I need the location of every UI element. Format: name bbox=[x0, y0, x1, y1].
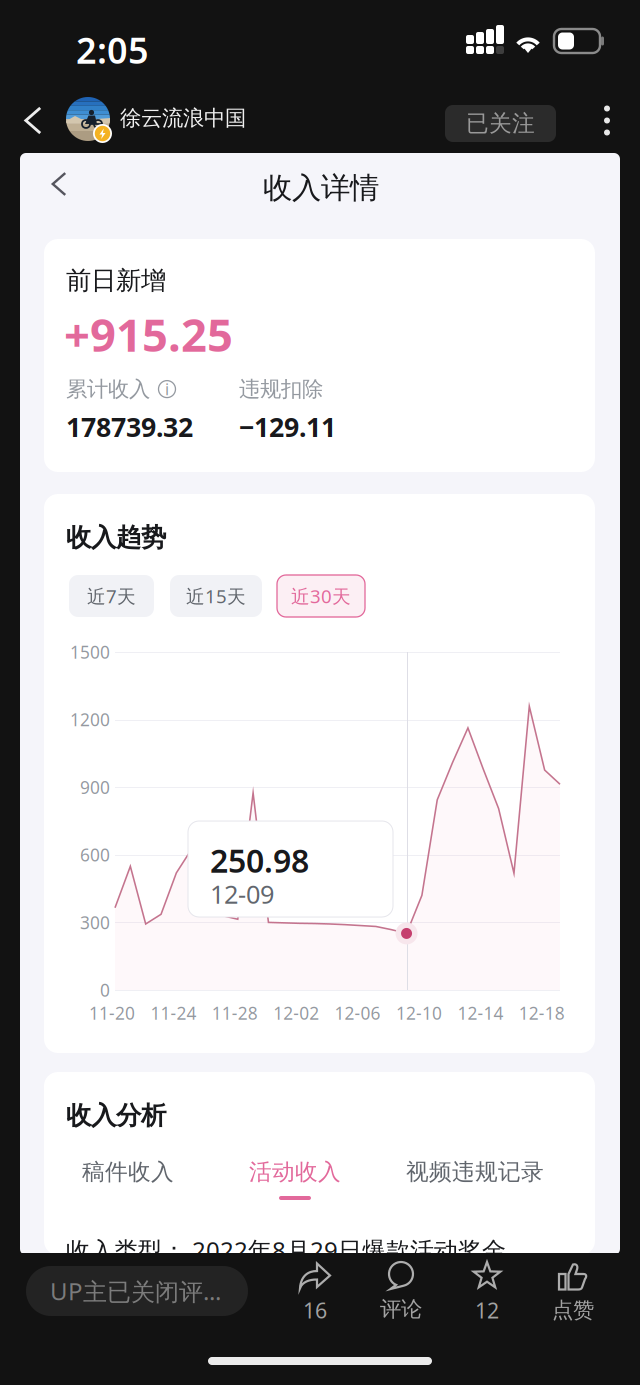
staticText: 1200 bbox=[70, 708, 110, 731]
staticText: 近15天 bbox=[186, 584, 246, 608]
button[interactable]: 12 bbox=[444, 1261, 530, 1327]
staticText: 11-20 bbox=[89, 1001, 135, 1024]
button[interactable]: 评论 bbox=[358, 1261, 444, 1327]
staticText: 评论 bbox=[380, 1296, 422, 1322]
button[interactable]: 16 bbox=[272, 1261, 358, 1327]
staticText: 违规扣除 bbox=[239, 376, 323, 402]
staticText: 12-14 bbox=[457, 1001, 503, 1024]
staticText: 250.98 bbox=[210, 839, 309, 881]
staticText: 前日新增 bbox=[66, 265, 166, 296]
staticText: 900 bbox=[80, 776, 110, 799]
staticText: 11-28 bbox=[212, 1001, 258, 1024]
staticText: 300 bbox=[80, 911, 110, 934]
staticText: 12-02 bbox=[273, 1001, 319, 1024]
staticText: 178739.32 bbox=[66, 409, 193, 444]
staticText: 0 bbox=[100, 978, 110, 1001]
button[interactable]: 近30天 bbox=[277, 575, 365, 617]
button[interactable]: UP主已关闭评... bbox=[26, 1266, 248, 1316]
staticText: 点赞 bbox=[552, 1297, 594, 1323]
staticText: 1500 bbox=[70, 640, 110, 663]
button[interactable]: 近7天 bbox=[69, 575, 154, 617]
button[interactable]: 点赞 bbox=[530, 1261, 616, 1327]
staticText: 近7天 bbox=[87, 584, 136, 608]
staticText: 2:05 bbox=[76, 26, 149, 74]
staticText: 12 bbox=[475, 1296, 499, 1324]
staticText: 稿件收入 bbox=[82, 1158, 174, 1186]
button[interactable]: 活动收入 bbox=[249, 1158, 341, 1206]
button[interactable]: Back bbox=[8, 88, 58, 153]
button[interactable]: More options bbox=[584, 88, 630, 153]
staticText: 收入类型： 2022年8月29日爆款活动奖金 bbox=[66, 1234, 506, 1266]
staticText: 11-24 bbox=[150, 1001, 196, 1024]
staticText: 视频违规记录 bbox=[406, 1158, 544, 1186]
button[interactable]: 近15天 bbox=[170, 575, 262, 617]
button[interactable]: 徐云流浪中国 bbox=[66, 88, 262, 153]
button[interactable]: Back bbox=[28, 153, 90, 215]
staticText: 16 bbox=[303, 1296, 327, 1324]
staticText: 12-10 bbox=[396, 1001, 442, 1024]
staticText: 12-06 bbox=[335, 1001, 381, 1024]
staticText: 12-09 bbox=[210, 877, 274, 911]
staticText: 600 bbox=[80, 843, 110, 866]
staticText: +915.25 bbox=[64, 304, 233, 364]
staticText: 已关注 bbox=[466, 110, 535, 137]
staticText: 收入趋势 bbox=[66, 522, 166, 553]
staticText: 近30天 bbox=[291, 584, 351, 608]
staticText: 收入分析 bbox=[66, 1100, 166, 1131]
staticText: 活动收入 bbox=[249, 1158, 341, 1186]
staticText: 12-18 bbox=[519, 1001, 565, 1024]
button[interactable]: 稿件收入 bbox=[82, 1158, 174, 1206]
staticText: i bbox=[165, 378, 169, 400]
button[interactable]: 视频违规记录 bbox=[406, 1158, 552, 1206]
staticText: 收入详情 bbox=[263, 170, 379, 206]
staticText: UP主已关闭评... bbox=[50, 1275, 221, 1307]
button[interactable]: 已关注 bbox=[445, 105, 556, 142]
staticText: 徐云流浪中国 bbox=[120, 105, 246, 131]
staticText: −129.11 bbox=[239, 409, 336, 444]
staticText: 累计收入 bbox=[66, 376, 150, 402]
